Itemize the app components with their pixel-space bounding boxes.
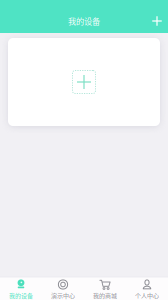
button[interactable]: Add device [146, 9, 168, 33]
button[interactable]: 个人中心 [126, 276, 168, 300]
button[interactable]: Add device [72, 70, 95, 93]
staticText: 个人中心 [135, 291, 159, 300]
button[interactable]: 演示中心 [42, 276, 84, 300]
staticText: 我的设备 [9, 291, 33, 300]
staticText: 我的商城 [93, 291, 117, 300]
button[interactable]: 我的设备 [0, 276, 42, 300]
button[interactable]: 我的商城 [84, 276, 126, 300]
staticText: 我的设备 [68, 15, 100, 27]
staticText: 演示中心 [51, 291, 75, 300]
